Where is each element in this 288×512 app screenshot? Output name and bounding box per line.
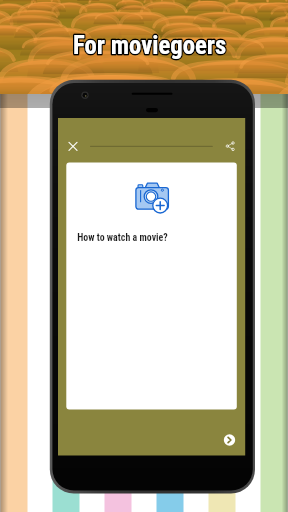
button[interactable] — [66, 163, 237, 410]
button[interactable]: Close — [64, 138, 82, 156]
button[interactable]: Next — [220, 430, 240, 450]
button[interactable]: Share — [221, 137, 240, 156]
